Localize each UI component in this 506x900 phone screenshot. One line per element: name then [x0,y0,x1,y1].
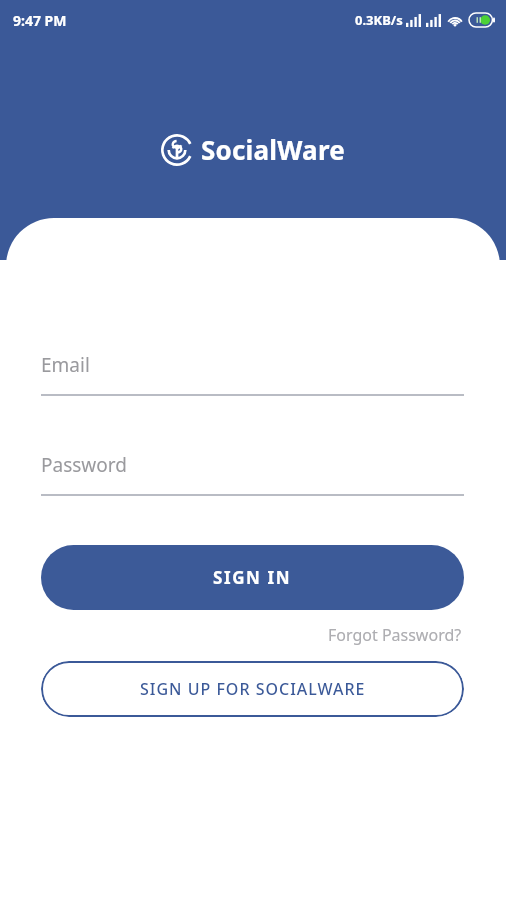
staticText: SIGN IN [213,566,292,589]
staticText: 0.3KB/s [355,11,403,29]
button[interactable]: Forgot Password? [326,621,464,649]
button[interactable]: SIGN IN [41,545,464,610]
button[interactable]: SIGN UP FOR SOCIALWARE [41,661,464,717]
staticText: SocialWare [201,132,345,167]
staticText: 9:47 PM [13,11,67,30]
staticText: SIGN UP FOR SOCIALWARE [140,678,366,700]
other: SocialWare logo [161,134,193,166]
staticText: Forgot Password? [328,624,462,646]
staticText: Password [41,452,127,478]
staticText: Email [41,352,90,378]
